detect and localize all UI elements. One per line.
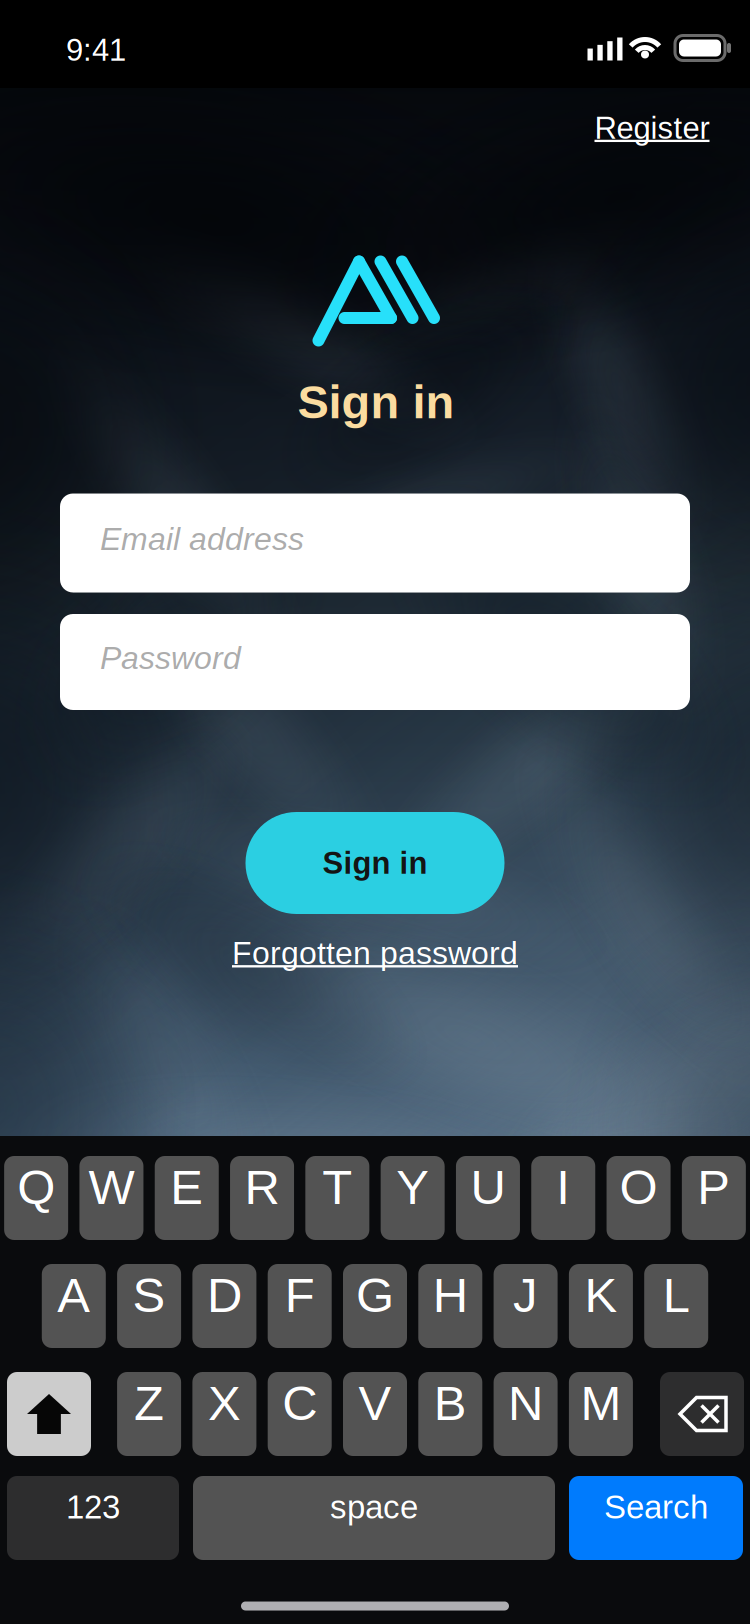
staticText: Register (594, 111, 709, 145)
staticText: W (88, 1160, 134, 1214)
button[interactable]: P (682, 1156, 746, 1240)
button[interactable]: Search (569, 1476, 743, 1560)
button[interactable]: Z (117, 1372, 181, 1456)
staticText: I (556, 1160, 570, 1214)
button[interactable]: 123 (7, 1476, 179, 1560)
staticText: 9:41 (66, 33, 126, 67)
button[interactable]: V (343, 1372, 407, 1456)
staticText: S (133, 1268, 166, 1322)
button[interactable]: C (268, 1372, 332, 1456)
staticText: R (244, 1160, 279, 1214)
button[interactable]: M (569, 1372, 633, 1456)
staticText: L (663, 1268, 690, 1322)
staticText: U (470, 1160, 505, 1214)
staticText: H (433, 1268, 468, 1322)
staticText: Y (396, 1160, 429, 1214)
button[interactable]: X (192, 1372, 256, 1456)
button[interactable]: R (230, 1156, 294, 1240)
button[interactable]: S (117, 1264, 181, 1348)
staticText: X (208, 1376, 241, 1430)
staticText: A (57, 1268, 90, 1322)
button[interactable]: E (155, 1156, 219, 1240)
button[interactable]: T (305, 1156, 369, 1240)
staticText: Sign in (297, 376, 454, 428)
button[interactable]: J (494, 1264, 558, 1348)
staticText: F (285, 1268, 315, 1322)
staticText: V (358, 1376, 391, 1430)
button[interactable]: Register (588, 105, 715, 151)
button[interactable]: F (268, 1264, 332, 1348)
staticText: Z (134, 1376, 164, 1430)
button[interactable]: U (456, 1156, 520, 1240)
button[interactable]: G (343, 1264, 407, 1348)
staticText: G (356, 1268, 394, 1322)
button[interactable]: H (418, 1264, 482, 1348)
button[interactable]: O (606, 1156, 670, 1240)
button[interactable]: B (418, 1372, 482, 1456)
staticText: C (282, 1376, 317, 1430)
staticText: 123 (66, 1489, 120, 1525)
staticText: D (207, 1268, 242, 1322)
staticText: P (697, 1160, 730, 1214)
button[interactable]: A (42, 1264, 106, 1348)
button[interactable]: L (644, 1264, 708, 1348)
staticText: E (170, 1160, 203, 1214)
staticText: B (434, 1376, 467, 1430)
button[interactable]: I (531, 1156, 595, 1240)
button[interactable]: D (192, 1264, 256, 1348)
staticText: space (330, 1489, 418, 1525)
button[interactable]: Shift (7, 1372, 91, 1456)
button[interactable]: Delete (660, 1372, 744, 1456)
staticText: O (619, 1160, 657, 1214)
staticText: M (580, 1376, 621, 1430)
staticText: J (513, 1268, 538, 1322)
staticText: N (508, 1376, 543, 1430)
staticText: Email address (100, 521, 304, 557)
staticText: Search (604, 1489, 708, 1525)
button[interactable]: space (193, 1476, 555, 1560)
staticText: Password (100, 640, 241, 676)
button[interactable]: Sign in (245, 812, 504, 914)
staticText: Forgotten password (232, 935, 518, 971)
button[interactable]: N (494, 1372, 558, 1456)
button[interactable]: W (79, 1156, 143, 1240)
staticText: T (322, 1160, 352, 1214)
button[interactable]: K (569, 1264, 633, 1348)
button[interactable]: Y (381, 1156, 445, 1240)
staticText: Q (17, 1160, 55, 1214)
button[interactable]: Forgotten password (226, 929, 524, 977)
button[interactable]: Q (4, 1156, 68, 1240)
staticText: Sign in (322, 846, 427, 880)
staticText: K (584, 1268, 617, 1322)
